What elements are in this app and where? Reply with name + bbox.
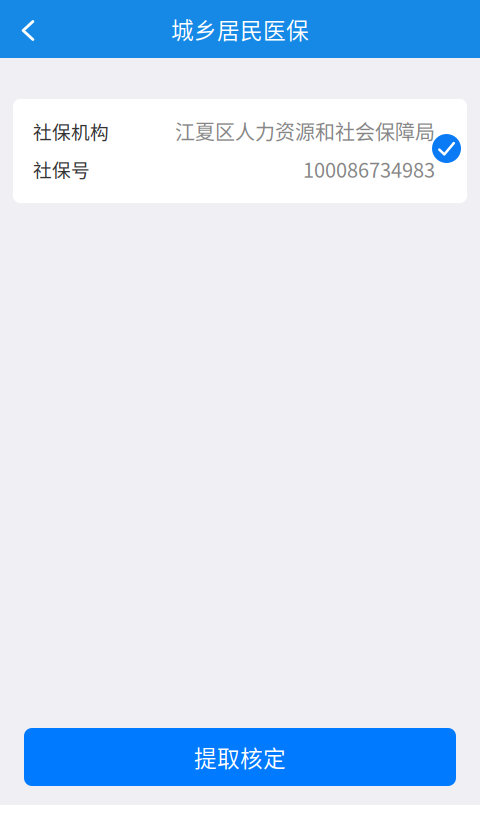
staticText: 100086734983 [303,154,435,183]
staticText: 社保号 [33,155,90,182]
button[interactable]: 社保机构 [13,99,467,203]
button[interactable]: Back [5,6,51,52]
staticText: 城乡居民医保 [171,13,309,45]
button[interactable]: 提取核定 [24,728,456,786]
staticText: 提取核定 [194,741,286,773]
staticText: 江夏区人力资源和社会保障局 [175,116,435,145]
staticText: 社保机构 [33,117,109,144]
